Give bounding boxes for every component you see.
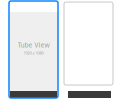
staticText: 1920 x 1080 (23, 50, 43, 56)
staticText: Tube View (17, 40, 49, 49)
